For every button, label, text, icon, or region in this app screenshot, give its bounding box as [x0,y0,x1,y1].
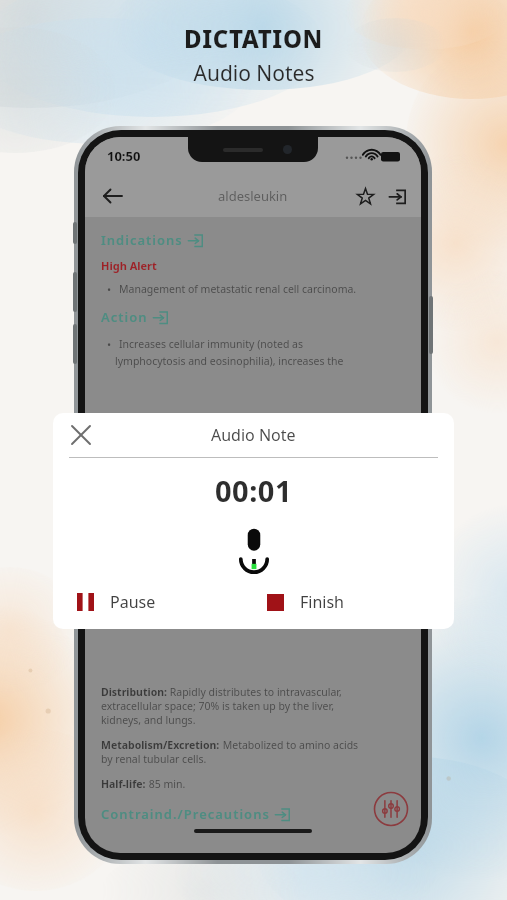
button[interactable]: Finish [253,591,454,613]
staticText: Action [101,308,148,326]
button[interactable]: Open link [381,180,413,212]
staticText: DICTATION [184,22,323,55]
staticText: Audio Notes [193,59,315,88]
staticText: Indications [101,231,183,249]
button[interactable]: Recording microphone [226,520,282,576]
staticText: Metabolism/Excretion: [101,738,220,752]
staticText: 10:50 [107,147,141,165]
staticText: Contraind./Precautions [101,805,270,823]
staticText: aldesleukin [218,187,288,205]
staticText: 00:01 [53,471,454,510]
staticText: Distribution: [101,685,167,699]
staticText: Audio Note [211,424,296,446]
staticText: Half-life: [101,777,146,791]
staticText: • [107,337,112,352]
staticText: Management of metastatic renal cell carc… [119,282,357,296]
staticText: Metabolized to amino acids [220,738,359,752]
staticText: 85 min. [146,777,186,791]
button[interactable]: Pause [53,591,253,613]
button[interactable]: Indications [101,231,203,249]
button[interactable]: Bookmark [349,180,381,212]
staticText: extracellular space; 70% is taken up by … [101,699,334,713]
button[interactable]: Action [101,308,168,326]
staticText: Pause [110,591,156,613]
staticText: Increases cellular immunity (noted as [119,337,303,351]
button[interactable]: Contraind./Precautions [101,805,290,823]
button[interactable]: Close [63,417,99,453]
button[interactable]: Filter [373,791,409,827]
staticText: High Alert [101,258,157,273]
staticText: Rapidly distributes to intravascular, [167,685,342,699]
staticText: • [107,282,112,297]
staticText: kidneys, and lungs. [101,713,196,727]
staticText: by renal tubular cells. [101,752,207,766]
staticText: Finish [300,591,345,613]
button[interactable]: Back [95,178,131,214]
staticText: lymphocytosis and eosinophilia), increas… [115,354,344,368]
